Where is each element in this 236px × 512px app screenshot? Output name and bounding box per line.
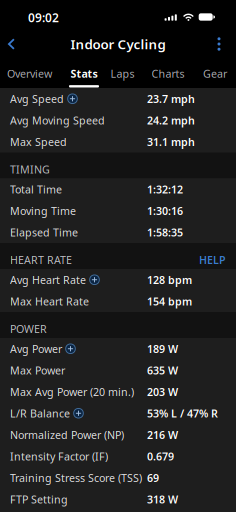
staticText: Elapsed Time [10,225,78,239]
staticText: 0.679 [147,449,174,463]
button[interactable]: Max Heart Rate [0,290,236,312]
staticText: Max Power [10,363,65,377]
staticText: Laps [110,66,134,81]
staticText: TIMING [10,162,50,176]
staticText: 635 W [147,363,178,377]
staticText: HELP [199,253,226,267]
staticText: 24.2 mph [147,113,195,127]
staticText: 189 W [147,342,178,356]
button[interactable]: Max Speed [0,131,236,152]
staticText: 154 bpm [147,294,192,308]
button[interactable]: Stats [69,58,99,88]
button[interactable]: Training Stress Score (TSS) [0,467,236,488]
staticText: 69 [147,471,159,485]
staticText: Normalized Power (NP) [10,428,124,442]
button[interactable]: Normalized Power (NP) [0,424,236,445]
staticText: Gear [203,66,227,81]
button[interactable]: FTP Setting [0,488,236,510]
staticText: Total Time [10,182,62,196]
button[interactable]: Max Power [0,359,236,381]
staticText: 31.1 mph [147,135,195,149]
button[interactable]: Back [0,31,22,57]
staticText: 216 W [147,428,178,442]
button[interactable]: Total Time [0,178,236,200]
staticText: Max Avg Power (20 min.) [10,385,134,399]
staticText: 1:32:12 [147,182,183,196]
staticText: Overview [7,66,52,81]
button[interactable]: Avg Speed [0,88,236,109]
staticText: Avg Power [10,342,62,356]
button[interactable]: Charts [151,58,185,88]
button[interactable]: Max Avg Power (20 min.) [0,381,236,402]
button[interactable]: Gear [203,58,227,88]
staticText: HEART RATE [10,253,72,267]
staticText: 1:30:16 [147,204,183,218]
staticText: Stats [70,66,97,81]
button[interactable]: HELP [199,253,226,267]
staticText: Training Stress Score (TSS) [10,471,142,485]
staticText: 318 W [147,492,178,506]
staticText: Max Speed [10,135,67,149]
staticText: 128 bpm [147,273,192,287]
staticText: 203 W [147,385,178,399]
button[interactable]: Moving Time [0,200,236,221]
button[interactable]: Intensity Factor (IF) [0,445,236,467]
staticText: Indoor Cycling [70,35,165,53]
staticText: Intensity Factor (IF) [10,449,108,463]
button[interactable]: L/R Balance [0,402,236,424]
button[interactable]: Overview [6,58,53,88]
staticText: Avg Heart Rate [10,273,86,287]
staticText: 23.7 mph [147,92,195,106]
button[interactable]: Avg Heart Rate [0,269,236,290]
staticText: 09:02 [28,9,59,25]
staticText: FTP Setting [10,492,68,506]
button[interactable]: More options [208,31,230,57]
staticText: Max Heart Rate [10,294,89,308]
staticText: 1:58:35 [147,225,183,239]
button[interactable]: Avg Power [0,338,236,359]
staticText: POWER [10,322,47,336]
button[interactable]: Laps [112,58,133,88]
staticText: Avg Moving Speed [10,113,105,127]
staticText: Avg Speed [10,92,64,106]
staticText: 53% L / 47% R [147,406,218,420]
staticText: Charts [151,66,184,81]
button[interactable]: Elapsed Time [0,221,236,243]
staticText: Moving Time [10,204,76,218]
button[interactable]: Avg Moving Speed [0,109,236,131]
staticText: L/R Balance [10,406,70,420]
